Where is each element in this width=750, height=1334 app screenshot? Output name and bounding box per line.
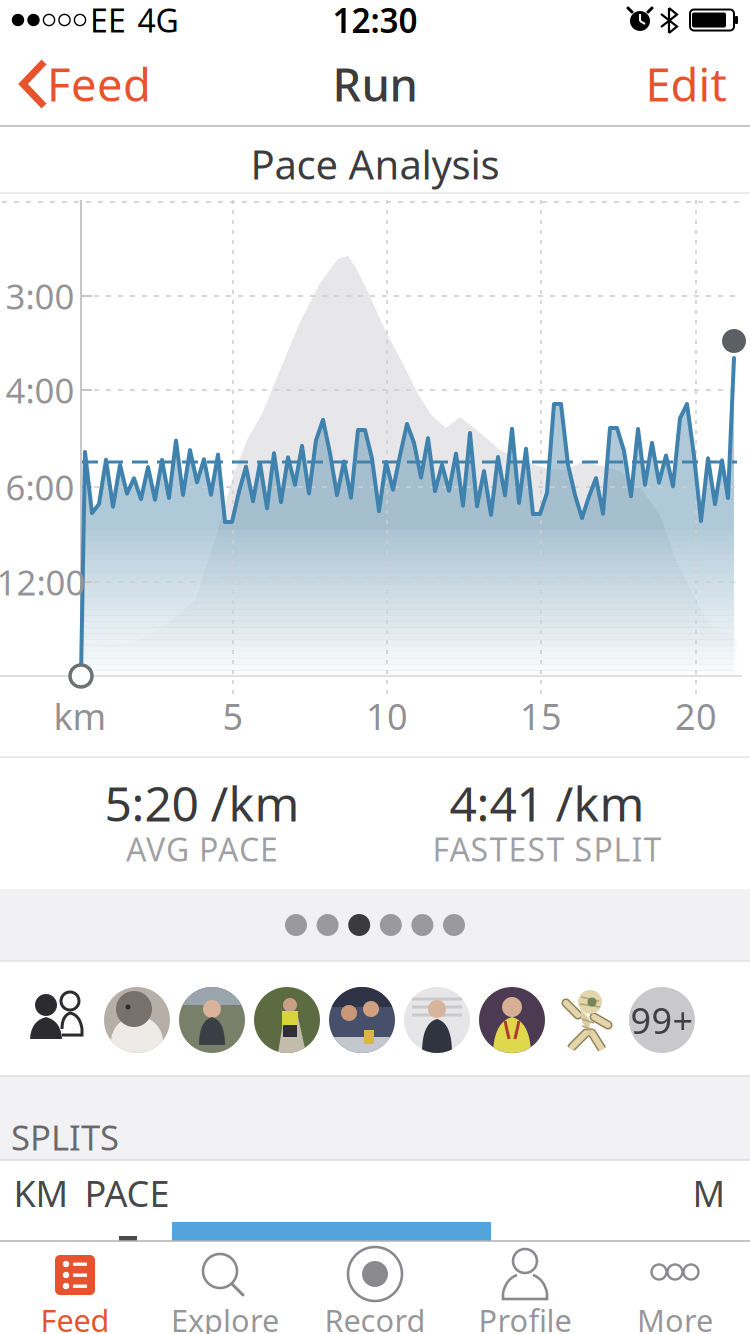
button[interactable]: Athlete avatar (554, 987, 620, 1053)
staticText: SPLITS (11, 1114, 119, 1160)
staticText: Run (332, 54, 417, 114)
staticText: Feed (47, 54, 151, 114)
staticText: 12:30 (332, 0, 417, 42)
button[interactable]: Athlete avatar (404, 987, 470, 1053)
staticText: Pace Analysis (250, 137, 499, 190)
staticText: 4G (137, 0, 178, 41)
staticText: AVG PACE (126, 828, 278, 870)
staticText: 99+ (630, 996, 693, 1044)
staticText: 5:20 /km (104, 771, 299, 835)
button[interactable]: Edit (631, 40, 741, 128)
staticText: PACE (84, 1169, 169, 1217)
staticText: M (692, 1169, 725, 1217)
staticText: 15 (520, 692, 562, 740)
staticText: FASTEST SPLIT (432, 828, 661, 870)
staticText: 4:41 /km (449, 771, 644, 835)
button[interactable]: Athlete avatar (254, 987, 320, 1053)
button[interactable]: Feed (0, 40, 160, 128)
button[interactable]: More (600, 1241, 750, 1334)
staticText: 12:00 (0, 559, 85, 605)
staticText: 20 (675, 692, 717, 740)
button[interactable]: Athlete avatar (179, 987, 245, 1053)
staticText: Feed (40, 1300, 109, 1334)
staticText: Profile (478, 1300, 571, 1334)
button[interactable]: Athlete avatar (479, 987, 545, 1053)
staticText: 5 (222, 692, 243, 740)
staticText: 10 (366, 692, 408, 740)
button[interactable]: Athlete avatar (104, 987, 170, 1053)
staticText: Edit (645, 54, 726, 114)
button[interactable]: Athlete avatar (329, 987, 395, 1053)
button[interactable]: Feed (0, 1241, 150, 1334)
staticText: EE (90, 0, 126, 41)
button[interactable]: Profile (450, 1241, 600, 1334)
button[interactable]: Record (300, 1241, 450, 1334)
staticText: More (637, 1300, 713, 1334)
staticText: km (53, 692, 106, 740)
staticText: Explore (171, 1300, 279, 1334)
staticText: KM (13, 1169, 68, 1217)
staticText: Record (324, 1300, 425, 1334)
staticText: 3:00 (5, 273, 74, 319)
button[interactable]: More kudos (629, 987, 695, 1053)
button[interactable]: Explore (150, 1241, 300, 1334)
staticText: 6:00 (5, 464, 74, 510)
button[interactable]: Kudos list (22, 983, 92, 1053)
staticText: 4:00 (5, 367, 74, 413)
